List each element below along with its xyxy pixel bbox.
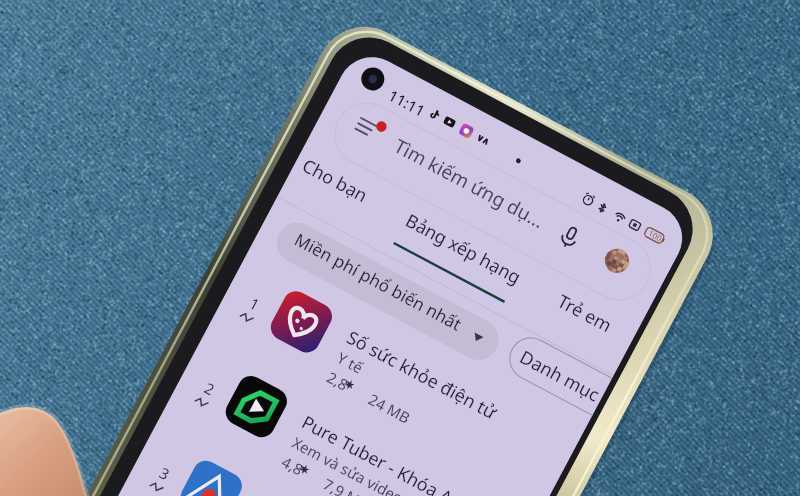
staticText: Y tế [334,347,367,378]
staticText: Bảng xếp hạng [401,208,526,290]
staticText: Miền phí phổ biến nhất [291,228,466,335]
staticText: 1 [246,293,263,315]
staticText: 11:11 [385,85,429,121]
button[interactable]: Trẻ em [553,289,616,338]
staticText: Cho bạn [298,153,372,208]
button[interactable]: Bảng xếp hạng [401,208,526,290]
staticText: Tìm kiếm ứng dụ... [390,133,549,234]
staticText: 4,8 [278,452,307,480]
button[interactable]: 1 [200,261,579,496]
staticText: 2,8 [323,367,352,395]
staticText: 7,9 MB [320,474,373,496]
staticText: Xem và sửa video [289,432,407,496]
button[interactable]: 3 [110,431,489,496]
button[interactable] [502,330,612,415]
staticText: Trẻ em [553,289,616,338]
staticText: 24 MB [365,389,414,428]
button[interactable] [270,215,506,367]
button[interactable] [324,92,661,311]
staticText: Số sức khỏe điện tử [342,325,502,425]
staticText: 2 [201,378,218,400]
staticText: Pure Tuber - Khóa Ad [297,410,467,496]
button[interactable]: Cho bạn [298,153,372,208]
staticText: Danh mục [515,344,604,407]
button[interactable]: 2 [155,346,534,496]
staticText: 3 [156,462,173,484]
staticText: 100 [647,227,664,244]
